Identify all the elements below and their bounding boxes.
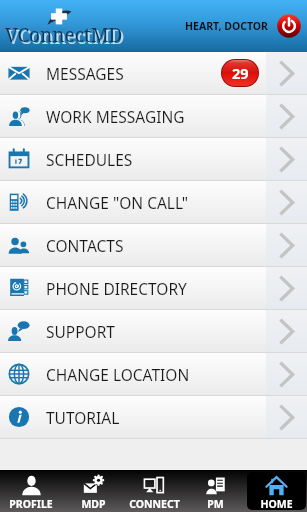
staticText: WORK MESSAGING <box>46 106 185 127</box>
button[interactable]: HOME <box>247 472 306 510</box>
button[interactable]: MDP <box>63 472 123 510</box>
button[interactable]: SUPPORT <box>0 310 307 352</box>
staticText: CONNECT <box>129 497 180 510</box>
staticText: HOME <box>260 497 293 510</box>
staticText: PROFILE <box>9 497 53 510</box>
staticText: SCHEDULES <box>46 149 133 170</box>
button[interactable]: PM <box>186 472 245 510</box>
button[interactable]: PHONE DIRECTORY <box>0 267 307 309</box>
staticText: MDP <box>81 497 106 510</box>
button[interactable]: CHANGE LOCATION <box>0 353 307 395</box>
button[interactable]: CHANGE "ON CALL" <box>0 181 307 223</box>
button[interactable]: WORK MESSAGING <box>0 95 307 137</box>
button[interactable]: Log out <box>275 12 303 40</box>
button[interactable]: TUTORIAL <box>0 396 307 438</box>
button[interactable]: MESSAGES <box>0 52 307 94</box>
staticText: VConnectMD <box>7 24 125 50</box>
staticText: CHANGE LOCATION <box>46 364 190 385</box>
staticText: CONTACTS <box>46 235 124 256</box>
button[interactable]: SCHEDULES <box>0 138 307 180</box>
staticText: SUPPORT <box>46 321 115 342</box>
staticText: MESSAGES <box>46 63 124 84</box>
staticText: TUTORIAL <box>46 407 120 428</box>
button[interactable]: CONTACTS <box>0 224 307 266</box>
staticText: VConnectMD <box>5 22 123 48</box>
staticText: PM <box>207 497 224 510</box>
button[interactable]: CONNECT <box>125 472 184 510</box>
staticText: 29 <box>232 63 249 83</box>
button[interactable]: PROFILE <box>1 472 61 510</box>
staticText: PHONE DIRECTORY <box>46 278 187 299</box>
staticText: CHANGE "ON CALL" <box>46 192 189 213</box>
staticText: HEART, DOCTOR <box>185 19 268 33</box>
